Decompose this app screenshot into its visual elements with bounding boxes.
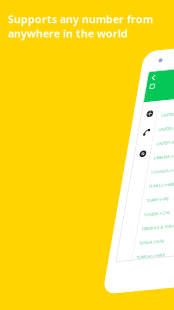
staticText: anywhere in the world [8, 26, 128, 40]
staticText: Supports any number from [8, 12, 153, 26]
